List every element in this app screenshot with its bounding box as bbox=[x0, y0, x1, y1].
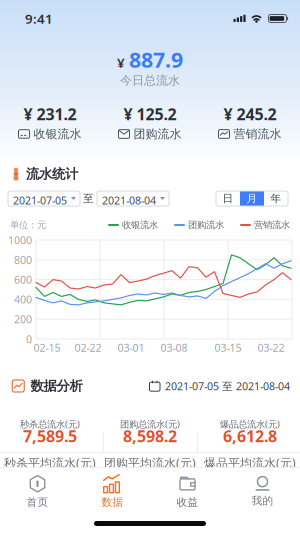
staticText: 团购流水 bbox=[133, 127, 181, 141]
button[interactable]: 年 bbox=[264, 191, 288, 206]
staticText: 团购总流水(元) bbox=[120, 418, 180, 430]
staticText: 秒杀总流水(元) bbox=[20, 418, 80, 430]
staticText: 6,612.8 bbox=[223, 425, 277, 447]
staticText: 单位：元 bbox=[10, 219, 46, 231]
staticText: 今日总流水 bbox=[120, 73, 180, 88]
button[interactable]: 日 bbox=[216, 191, 240, 206]
staticText: 月 bbox=[246, 192, 257, 205]
staticText: 收益 bbox=[176, 496, 198, 509]
staticText: 2021-08-04 bbox=[102, 193, 156, 208]
staticText: 0 bbox=[26, 332, 32, 346]
staticText: 03-01 bbox=[117, 340, 144, 355]
staticText: 2021-07-05 bbox=[13, 193, 67, 208]
staticText: 首页 bbox=[26, 496, 48, 509]
staticText: 爆品总流水(元) bbox=[220, 418, 280, 430]
staticText: 秒杀平均流水(元) bbox=[4, 455, 96, 471]
staticText: 流水统计 bbox=[26, 166, 78, 182]
staticText: 年 bbox=[270, 192, 281, 205]
staticText: 03-22 bbox=[257, 340, 284, 355]
staticText: 营销流水 bbox=[254, 219, 290, 231]
button[interactable]: 收益 bbox=[150, 474, 225, 509]
staticText: 团购流水 bbox=[188, 219, 224, 231]
staticText: 03-08 bbox=[160, 340, 187, 355]
staticText: 数据分析 bbox=[30, 378, 82, 394]
staticText: 8,598.2 bbox=[123, 425, 177, 447]
staticText: 2021-07-05 至 2021-08-04 bbox=[165, 379, 290, 393]
staticText: 7,589.5 bbox=[23, 425, 77, 447]
staticText: ¥ 245.2 bbox=[223, 103, 276, 125]
staticText: 收银流水 bbox=[122, 219, 158, 231]
staticText: 数据 bbox=[101, 496, 123, 509]
staticText: 我的 bbox=[251, 494, 273, 507]
button[interactable]: 2021-07-05 bbox=[8, 191, 80, 206]
button[interactable]: 2021-08-04 bbox=[97, 191, 169, 206]
staticText: 02-22 bbox=[74, 340, 101, 355]
staticText: ¥ bbox=[117, 54, 125, 71]
staticText: 收银流水 bbox=[33, 127, 81, 141]
staticText: 至 bbox=[83, 192, 94, 205]
staticText: 800 bbox=[14, 253, 32, 267]
button[interactable]: 首页 bbox=[0, 474, 75, 509]
staticText: 03-15 bbox=[214, 340, 241, 355]
staticText: 爆品平均流水(元) bbox=[204, 455, 296, 471]
staticText: 团购平均流水(元) bbox=[104, 455, 196, 471]
staticText: 1000 bbox=[8, 233, 32, 247]
staticText: 600 bbox=[14, 272, 32, 287]
staticText: 200 bbox=[14, 312, 32, 326]
staticText: 营销流水 bbox=[233, 127, 281, 141]
staticText: ¥ 231.2 bbox=[23, 103, 76, 125]
button[interactable]: 月 bbox=[240, 191, 264, 206]
staticText: ¥ 125.2 bbox=[123, 103, 176, 125]
staticText: 400 bbox=[14, 292, 32, 306]
button[interactable]: 我的 bbox=[225, 475, 300, 507]
staticText: 02-15 bbox=[33, 340, 60, 355]
button[interactable]: 2021-07-05 至 2021-08-04 bbox=[149, 379, 290, 393]
staticText: 日 bbox=[222, 192, 233, 205]
button[interactable]: 数据 bbox=[75, 474, 150, 509]
staticText: 887.9 bbox=[129, 45, 183, 74]
staticText: 9:41 bbox=[25, 10, 53, 27]
